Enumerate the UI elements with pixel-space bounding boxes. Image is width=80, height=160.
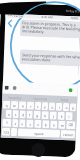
staticText: space [34,131,44,136]
button[interactable]: Attach [13,86,17,90]
button[interactable]: s [12,110,19,118]
button[interactable]: f [26,110,33,119]
button[interactable]: r [27,101,34,110]
staticText: i [59,105,60,110]
button[interactable]: z [12,119,18,127]
staticText: b [44,122,47,127]
staticText: y [44,104,46,109]
staticText: d [22,112,25,117]
staticText: j [52,113,54,118]
button[interactable]: y [42,102,48,110]
staticText: a [8,112,10,117]
button[interactable]: ⇧ [2,119,11,127]
staticText: h [43,113,47,118]
staticText: w [13,103,16,108]
button[interactable]: x [19,119,25,127]
staticText: o [65,105,68,110]
staticText: 123 [3,130,9,135]
button[interactable]: a [5,110,12,118]
button[interactable]: b [42,120,49,128]
button[interactable]: t [35,102,41,110]
staticText: ⌫ [68,123,73,127]
button[interactable]: Yesterday [2,94,27,102]
staticText: f [28,113,31,118]
button[interactable]: Camera [5,86,9,90]
button[interactable]: v [34,120,41,128]
button[interactable]: e [19,101,26,109]
button[interactable]: Today [52,95,77,103]
staticText: s [15,112,17,117]
button[interactable]: Home [31,143,45,157]
button[interactable]: u [49,102,55,111]
button[interactable]: h [41,111,49,119]
staticText: p [72,105,75,110]
staticText: Send your response with Yes when evacuat… [22,52,80,65]
button[interactable]: Send [69,88,73,92]
staticText: Tomorrow [33,97,47,101]
staticText: t [37,104,39,109]
staticText: Fire alarm in progress. This is a drill.… [22,20,80,37]
staticText: q [5,103,8,108]
button[interactable]: Send your response with Yes when evacuat… [20,49,80,67]
staticText: m [60,123,64,128]
button[interactable]: g [33,111,41,119]
staticText: e [22,103,24,108]
button[interactable]: ⌫ [66,121,75,129]
staticText: z [14,121,16,126]
button[interactable]: j [49,111,57,120]
staticText: n [52,122,55,128]
staticText: return [63,132,74,137]
button[interactable]: o [63,103,69,111]
button[interactable]: c [26,119,33,128]
button[interactable]: p [70,103,76,111]
staticText: Yesterday [8,96,22,100]
button[interactable]: w [11,101,18,109]
button[interactable]: m [58,121,65,129]
button[interactable]: k [57,112,65,120]
staticText: g [35,113,39,118]
button[interactable]: Back [5,18,16,29]
button[interactable]: return [61,130,75,138]
staticText: u [51,104,54,109]
staticText: ⇧ [5,121,8,125]
button[interactable]: i [56,103,62,111]
button[interactable]: d [19,110,26,118]
button[interactable] [11,128,17,136]
button[interactable]: Fire alarm in progress. This is a drill.… [20,19,80,39]
staticText: 100% [70,16,78,20]
staticText: v [37,122,39,127]
button[interactable]: 123 [2,128,10,136]
staticText: ••••• Carrier [7,14,24,18]
staticText: l [68,114,70,119]
button[interactable]: n [50,120,57,129]
staticText: c [29,122,31,127]
staticText: Friday 8:15 AM [66,9,80,14]
staticText: 9:41 AM [41,15,53,19]
staticText: x [21,121,23,126]
staticText: Today [60,98,69,102]
staticText: k [60,114,63,119]
button[interactable]: space [18,128,60,138]
button[interactable]: Tomorrow [27,94,52,102]
button[interactable]: l [65,112,73,120]
staticText: r [30,104,32,109]
button[interactable]: q [3,101,10,109]
